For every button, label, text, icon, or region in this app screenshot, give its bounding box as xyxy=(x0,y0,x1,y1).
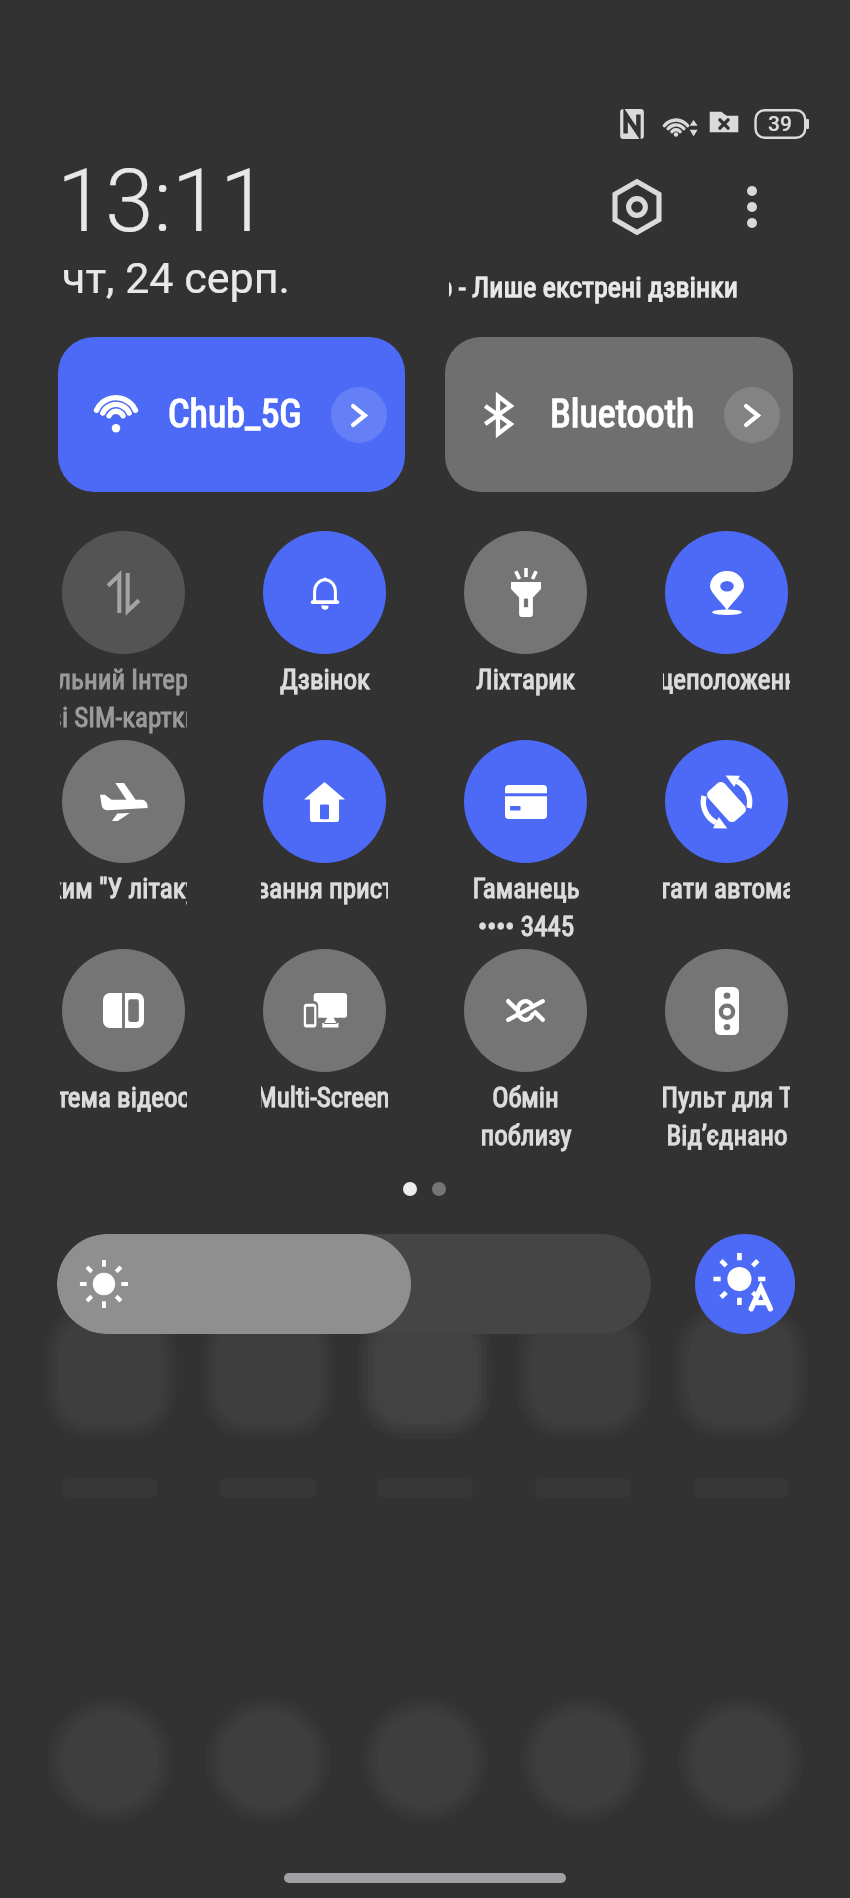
button[interactable]: Підсистема відеооб’єктів xyxy=(62,949,185,1072)
staticText: чт, 24 серп. xyxy=(62,253,290,303)
button[interactable]: Bluetooth xyxy=(445,337,793,492)
button[interactable]: Мобільний Інтернет xyxy=(62,531,185,654)
staticText: Від’єднано xyxy=(666,1120,788,1152)
button[interactable]: Обмін xyxy=(464,949,587,1072)
button[interactable]: Обертати автоматично xyxy=(665,740,788,863)
button[interactable]: Місцеположення xyxy=(665,531,788,654)
staticText: Мобільний Інтернет xyxy=(60,664,187,696)
staticText: Режим "У літаку" xyxy=(60,873,187,905)
staticText: Гаманець xyxy=(472,873,580,905)
staticText: Multi-Screen xyxy=(261,1082,388,1114)
staticText: Сканування пристроїв xyxy=(261,873,388,905)
staticText: Обертати автоматично xyxy=(663,873,790,905)
staticText: Ліхтарик xyxy=(476,664,575,696)
staticText: Київстар - Лише екстрені дзвінки xyxy=(449,271,738,304)
button[interactable]: Пульт для ТВ xyxy=(665,949,788,1072)
staticText: Пульт для ТВ xyxy=(663,1082,790,1114)
staticText: •••• 3445 xyxy=(478,911,574,943)
button[interactable]: More options xyxy=(710,165,794,249)
button[interactable]: Chub_5G xyxy=(58,337,405,492)
button[interactable]: Ліхтарик xyxy=(464,531,587,654)
staticText: Обмін xyxy=(492,1082,559,1114)
button[interactable]: Auto brightness xyxy=(695,1234,795,1334)
staticText: 39 xyxy=(768,112,792,137)
staticText: Bluetooth xyxy=(550,392,695,437)
button[interactable]: Сканування пристроїв xyxy=(263,740,386,863)
button[interactable]: Гаманець xyxy=(464,740,587,863)
staticText: Дві SIM-картки xyxy=(60,702,187,734)
staticText: поблизу xyxy=(480,1120,572,1152)
button[interactable]: Multi-Screen xyxy=(263,949,386,1072)
button[interactable]: Режим "У літаку" xyxy=(62,740,185,863)
button[interactable]: Brightness xyxy=(57,1234,651,1334)
staticText: Місцеположення xyxy=(663,664,790,696)
staticText: Chub_5G xyxy=(168,392,302,437)
staticText: Дзвінок xyxy=(280,664,370,696)
staticText: 13:11 xyxy=(57,150,269,252)
button[interactable]: Edit quick settings xyxy=(595,165,679,249)
button[interactable]: Дзвінок xyxy=(263,531,386,654)
staticText: Підсистема відеооб’єктів xyxy=(60,1082,187,1114)
